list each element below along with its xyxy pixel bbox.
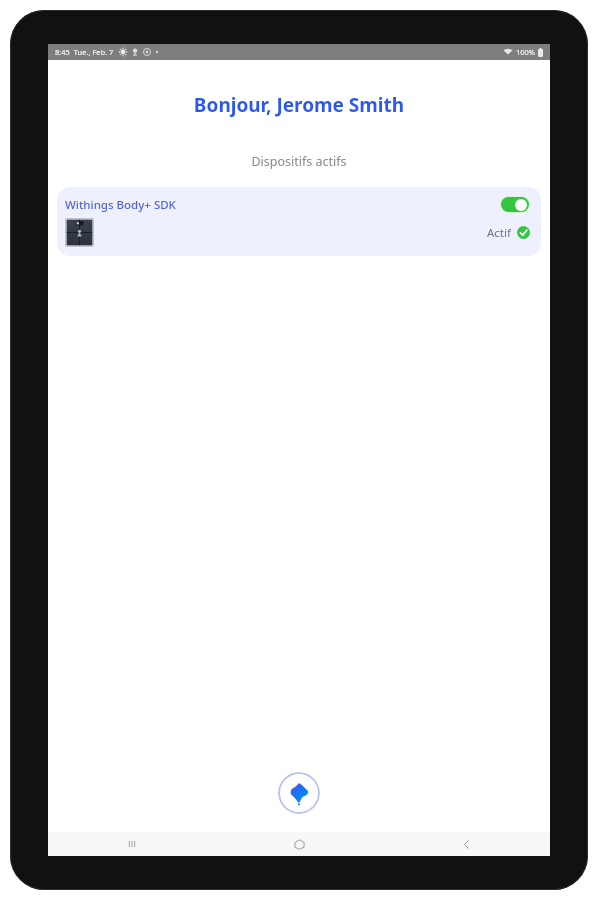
staticText: Bonjour, Jerome Smith: [48, 92, 550, 118]
staticText: Withings Body+ SDK: [65, 197, 500, 213]
button[interactable]: Withings Body+ SDK: [57, 187, 541, 256]
staticText: Dispositifs actifs: [48, 153, 550, 170]
button[interactable]: Retour: [383, 832, 550, 856]
button[interactable]: Applications récentes: [48, 832, 216, 856]
staticText: 8:45 Tue., Feb. 7: [55, 47, 114, 57]
button[interactable]: Activer le dispositif: [500, 196, 530, 213]
button[interactable]: Ajouter un dispositif Withings: [278, 772, 320, 814]
staticText: Actif: [487, 225, 511, 241]
button[interactable]: Accueil: [216, 832, 383, 856]
staticText: 100%: [516, 47, 536, 57]
